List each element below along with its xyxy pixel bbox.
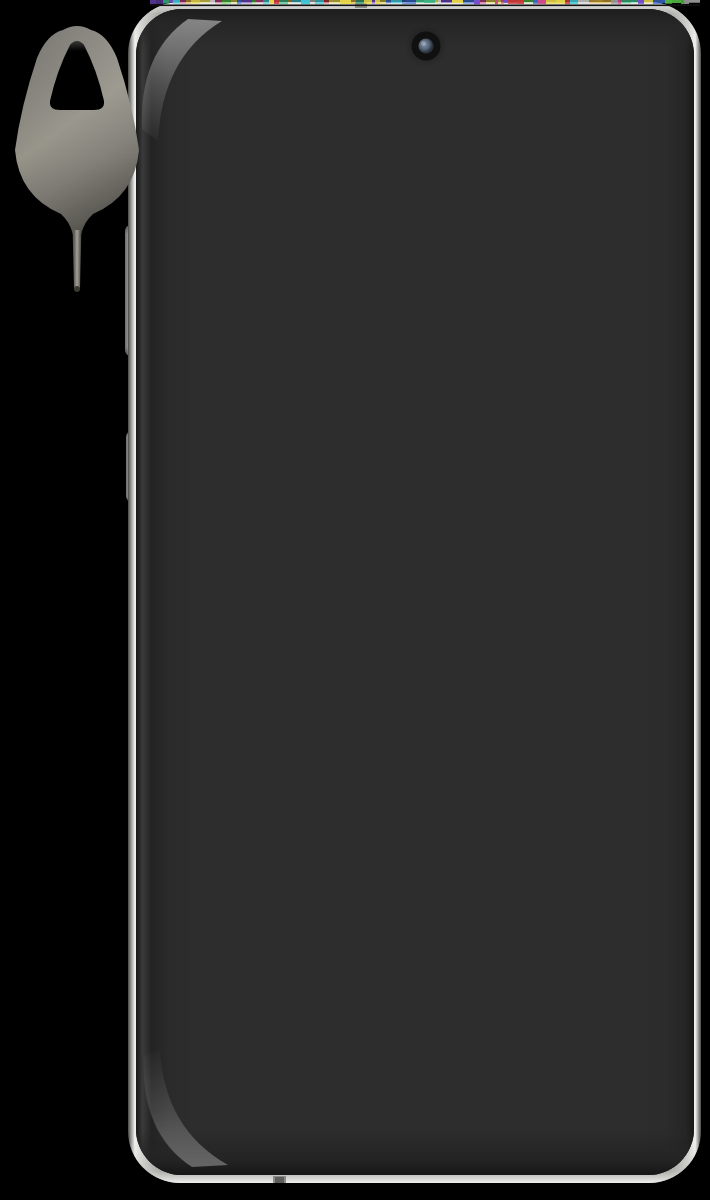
button[interactable]: Phone and SIM eject tool illustration <box>0 0 710 1200</box>
